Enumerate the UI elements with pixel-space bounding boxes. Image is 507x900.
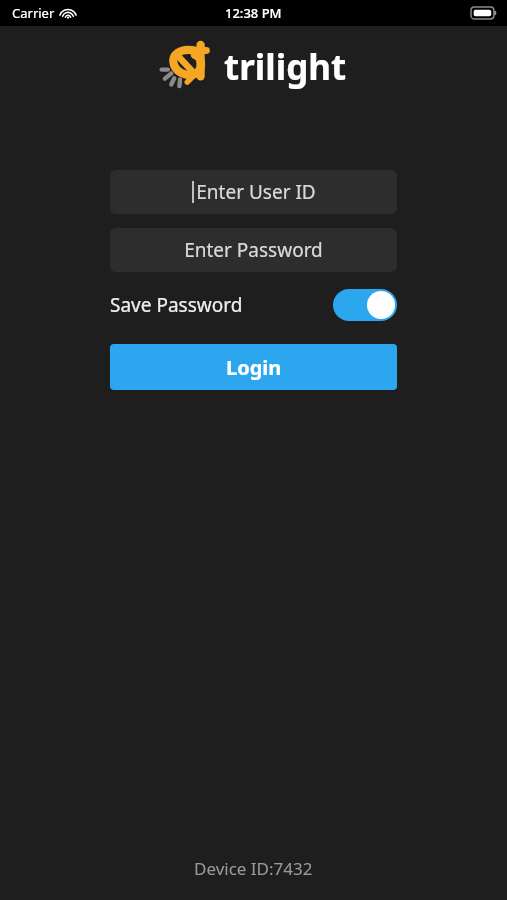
button[interactable]: Enter Password bbox=[110, 228, 397, 272]
staticText: 12:38 PM bbox=[225, 4, 282, 22]
button[interactable]: Enter User ID bbox=[110, 170, 397, 214]
staticText: Login bbox=[226, 354, 282, 381]
staticText: Carrier bbox=[12, 4, 55, 22]
button[interactable]: Save Password toggle, on bbox=[333, 289, 397, 321]
staticText: trilight bbox=[224, 43, 347, 91]
staticText: Save Password bbox=[110, 292, 243, 318]
staticText: Device ID:7432 bbox=[194, 857, 313, 880]
staticText: Enter User ID bbox=[196, 179, 316, 205]
staticText: Enter Password bbox=[184, 237, 323, 263]
button[interactable]: Login bbox=[110, 344, 397, 390]
